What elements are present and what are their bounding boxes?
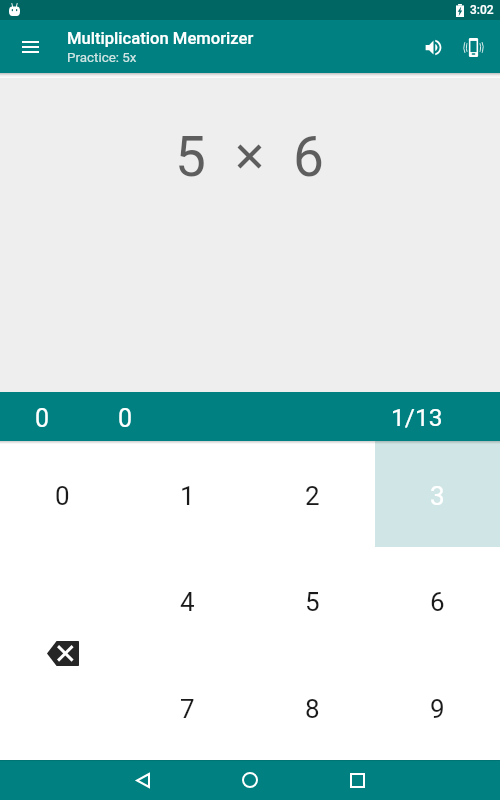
- staticText: 6: [430, 587, 445, 617]
- button[interactable]: 1: [125, 441, 250, 547]
- staticText: 3: [430, 481, 445, 511]
- button[interactable]: Recent apps: [337, 760, 377, 800]
- button[interactable]: Back: [123, 760, 163, 800]
- button[interactable]: Home: [230, 760, 270, 800]
- button[interactable]: 4: [125, 547, 250, 653]
- staticText: 3:02: [470, 3, 494, 17]
- button[interactable]: Vibration: [449, 23, 497, 71]
- button[interactable]: Sound on: [409, 23, 457, 71]
- button[interactable]: Open navigation menu: [0, 20, 60, 73]
- staticText: 4: [180, 587, 195, 617]
- staticText: 8: [305, 694, 320, 724]
- staticText: Multiplication Memorizer: [67, 29, 254, 48]
- staticText: 1: [180, 481, 195, 511]
- button[interactable]: 3: [375, 441, 500, 547]
- button[interactable]: 6: [375, 547, 500, 653]
- button[interactable]: 0: [0, 441, 125, 547]
- staticText: 5: [305, 587, 320, 617]
- button[interactable]: 9: [375, 653, 500, 760]
- staticText: 9: [430, 694, 445, 724]
- staticText: 1/13: [391, 403, 443, 432]
- staticText: 0: [118, 404, 133, 433]
- button[interactable]: 8: [250, 653, 375, 760]
- staticText: 0: [35, 404, 50, 433]
- staticText: 5: [175, 125, 206, 189]
- staticText: 6: [293, 125, 324, 189]
- staticText: 0: [55, 481, 70, 511]
- staticText: 2: [305, 481, 320, 511]
- button[interactable]: 5: [250, 547, 375, 653]
- button[interactable]: 2: [250, 441, 375, 547]
- staticText: 7: [180, 694, 195, 724]
- button[interactable]: 7: [125, 653, 250, 760]
- button[interactable]: Backspace: [0, 547, 125, 760]
- staticText: Practice: 5x: [67, 50, 137, 66]
